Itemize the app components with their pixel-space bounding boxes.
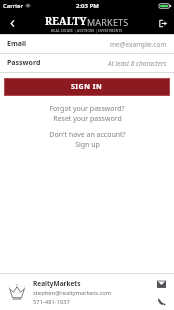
staticText: stephen@realtymarkets.com	[33, 289, 112, 297]
button[interactable]: Back	[0, 12, 24, 34]
button[interactable]: Email	[0, 35, 174, 54]
staticText: Don't have an account?	[49, 130, 126, 140]
staticText: Carrier	[3, 2, 23, 10]
button[interactable]: Password	[0, 54, 174, 73]
staticText: REAL ESTATE | AUCTIONS | INVESTMENTS	[51, 29, 123, 33]
staticText: At least 8 characters	[108, 59, 167, 68]
staticText: 571-481-1037	[33, 298, 70, 306]
button[interactable]: Sign in	[150, 12, 174, 34]
button[interactable]: Call	[154, 294, 168, 308]
staticText: MARKETS	[87, 16, 129, 28]
button[interactable]: SIGN IN	[4, 78, 170, 96]
staticText: Sign up	[75, 140, 100, 150]
staticText: 2:03 PM	[76, 2, 99, 10]
staticText: SIGN IN	[71, 82, 103, 92]
staticText: REALTY	[45, 14, 87, 28]
button[interactable]: Forgot your password?	[49, 104, 125, 124]
staticText: Forgot your password?	[49, 104, 125, 114]
staticText: RealtyMarkets	[33, 279, 81, 288]
staticText: Reset your password	[53, 114, 122, 124]
staticText: me@example.com	[110, 40, 167, 49]
staticText: Email	[7, 39, 27, 49]
staticText: Password	[7, 58, 41, 68]
button[interactable]: Email	[154, 277, 168, 291]
button[interactable]: Don't have an account?	[49, 130, 126, 150]
